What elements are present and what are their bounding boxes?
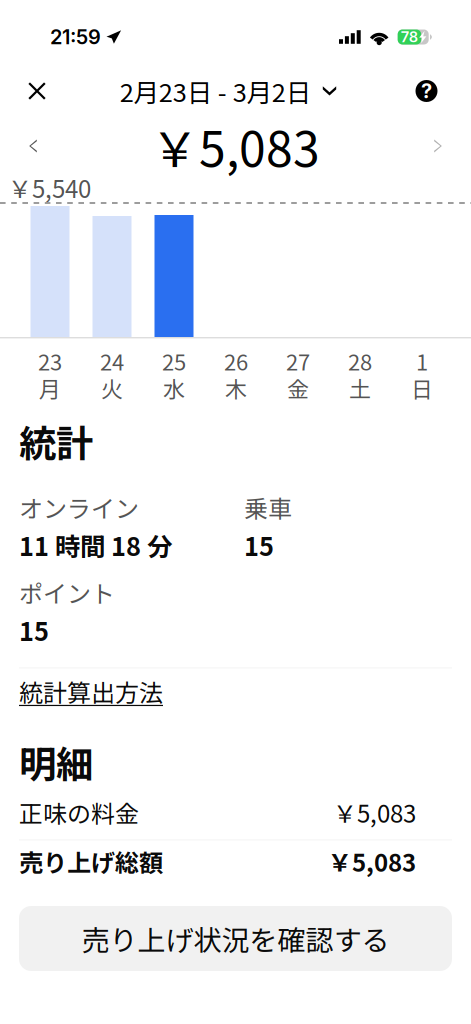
button[interactable]: Previous period	[0, 119, 66, 173]
staticText: ￥5,540	[8, 170, 91, 205]
staticText: 25	[162, 345, 186, 377]
staticText: 21:59	[50, 25, 101, 49]
staticText: ?	[421, 79, 432, 103]
staticText: オンライン	[19, 490, 139, 525]
staticText: 統計	[19, 414, 93, 468]
staticText: 売り上げ状況を確認する	[81, 918, 389, 959]
staticText: 26	[224, 345, 248, 377]
staticText: 水	[163, 372, 185, 404]
staticText: 78	[401, 28, 418, 46]
staticText: 24	[100, 345, 124, 377]
button[interactable]: Help	[382, 63, 471, 119]
staticText: ポイント	[19, 575, 115, 610]
staticText: 土	[349, 372, 371, 404]
staticText: 乗車	[244, 490, 292, 525]
staticText: 15	[244, 527, 274, 563]
staticText: 日	[411, 372, 433, 404]
staticText: 23	[38, 345, 62, 377]
staticText: 1	[416, 345, 428, 377]
staticText: 木	[225, 372, 247, 404]
button[interactable]: 統計算出方法	[19, 668, 163, 714]
button[interactable]: 2月23日 - 3月2日	[120, 63, 336, 119]
staticText: 月	[39, 372, 61, 404]
button[interactable]: Next period	[405, 119, 471, 173]
staticText: 売り上げ総額	[19, 844, 163, 879]
staticText: 正味の料金	[19, 795, 139, 830]
staticText: 15	[19, 612, 49, 648]
staticText: ￥5,083	[333, 795, 416, 830]
staticText: 統計算出方法	[19, 674, 163, 709]
staticText: 金	[287, 372, 309, 404]
button[interactable]: Close	[0, 63, 74, 119]
staticText: 28	[348, 345, 372, 377]
staticText: ￥5,083	[151, 111, 320, 181]
button[interactable]: 売り上げ状況を確認する	[19, 906, 452, 971]
staticText: ￥5,083	[328, 844, 416, 879]
staticText: 2月23日 - 3月2日	[120, 73, 311, 109]
staticText: 明細	[19, 735, 93, 789]
staticText: 27	[286, 345, 310, 377]
staticText: 11 時間 18 分	[19, 527, 172, 563]
staticText: 火	[101, 372, 123, 404]
